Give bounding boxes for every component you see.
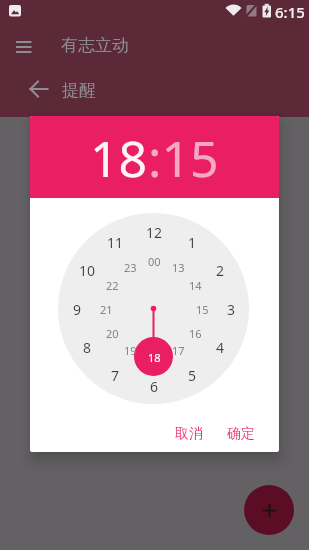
staticText: 3 bbox=[227, 300, 236, 319]
staticText: 23 bbox=[124, 260, 137, 275]
staticText: 有志立动 bbox=[61, 35, 129, 56]
button[interactable]: 取消 bbox=[167, 417, 211, 451]
staticText: 17 bbox=[172, 343, 185, 358]
staticText: 16 bbox=[189, 326, 202, 341]
staticText: 2 bbox=[216, 261, 225, 280]
staticText: 10 bbox=[79, 261, 96, 280]
staticText: 8 bbox=[83, 338, 92, 357]
staticText: 4 bbox=[216, 338, 225, 357]
staticText: 21 bbox=[100, 302, 113, 317]
staticText: 18 bbox=[148, 350, 161, 365]
staticText: 确定 bbox=[227, 425, 255, 443]
staticText: 6 bbox=[150, 377, 159, 396]
staticText: 1 bbox=[188, 233, 197, 252]
staticText: 15 bbox=[196, 302, 209, 317]
staticText: 00 bbox=[148, 254, 161, 269]
staticText: 18 bbox=[90, 124, 148, 192]
button[interactable] bbox=[244, 485, 294, 535]
staticText: 20 bbox=[106, 326, 119, 341]
staticText: 11 bbox=[107, 233, 124, 252]
staticText: 9 bbox=[73, 300, 82, 319]
staticText: 7 bbox=[111, 366, 120, 385]
staticText: 提醒 bbox=[62, 80, 96, 101]
staticText: 22 bbox=[106, 278, 119, 293]
staticText: 14 bbox=[189, 278, 202, 293]
button[interactable] bbox=[26, 76, 52, 102]
staticText: :15 bbox=[148, 124, 219, 192]
staticText: 取消 bbox=[175, 425, 203, 443]
staticText: 5 bbox=[188, 366, 197, 385]
staticText: 19 bbox=[124, 343, 137, 358]
staticText: 6:15 bbox=[275, 2, 305, 22]
button[interactable] bbox=[8, 35, 40, 59]
staticText: 13 bbox=[172, 260, 185, 275]
staticText: 12 bbox=[146, 223, 163, 242]
button[interactable]: 确定 bbox=[219, 417, 263, 451]
